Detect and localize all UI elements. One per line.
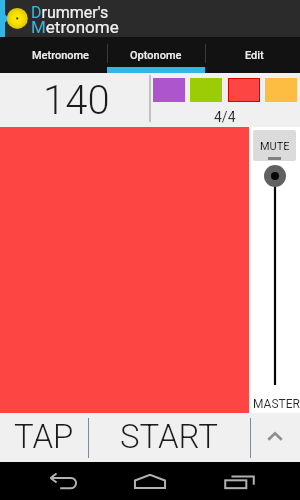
button[interactable]: Expand panel [250, 413, 300, 462]
staticText: Optonome [130, 49, 182, 62]
button[interactable]: Master volume [249, 127, 300, 413]
button[interactable] [228, 78, 260, 102]
staticText: TAP [14, 417, 74, 456]
button[interactable]: TAP [0, 413, 88, 462]
button[interactable]: MUTE [253, 130, 296, 161]
staticText: START [120, 417, 218, 456]
staticText: Metronome [32, 49, 90, 62]
staticText: 140 [43, 77, 110, 124]
button[interactable]: Recent apps [217, 463, 261, 500]
button[interactable]: START [88, 413, 250, 462]
button[interactable]: Metronome [0, 37, 107, 73]
button[interactable]: Edit [205, 37, 300, 73]
staticText: MUTE [260, 140, 290, 153]
button[interactable]: Back [41, 463, 85, 500]
staticText: Edit [245, 49, 264, 62]
button[interactable]: Home [128, 462, 172, 500]
staticText: Metronome [31, 17, 119, 37]
button[interactable]: Optonome [107, 37, 205, 73]
staticText: Drummer's [31, 3, 109, 22]
staticText: 4/4 [214, 109, 236, 125]
staticText: MASTER [253, 397, 300, 411]
